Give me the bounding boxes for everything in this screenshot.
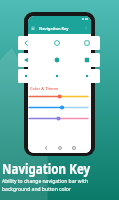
staticText: Color & Theme <box>30 86 59 91</box>
staticText: Ability to change navigation bar with ba… <box>2 178 88 193</box>
button[interactable]: More options <box>84 26 88 30</box>
button[interactable]: Navigation style option <box>18 53 100 67</box>
button[interactable]: Navigation style option <box>18 36 100 50</box>
staticText: Navigation Key <box>2 159 91 178</box>
button[interactable]: Menu <box>31 26 35 30</box>
staticText: Navigation Key <box>39 26 69 31</box>
button[interactable]: Navigation style option <box>18 69 100 83</box>
